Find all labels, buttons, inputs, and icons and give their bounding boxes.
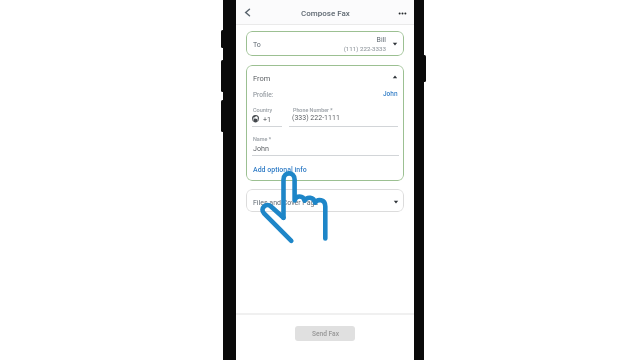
staticText: Files and Cover Page xyxy=(253,199,319,207)
button[interactable]: Back xyxy=(240,5,255,20)
staticText: Name * xyxy=(253,136,272,142)
staticText: Send Fax xyxy=(312,330,339,338)
staticText: To xyxy=(253,41,261,49)
staticText: John xyxy=(383,90,398,98)
button[interactable]: Send Fax xyxy=(295,326,355,341)
button[interactable]: More options xyxy=(395,6,409,20)
staticText: +1 xyxy=(263,115,272,123)
button[interactable]: To xyxy=(246,31,404,56)
button[interactable]: Files and Cover Page xyxy=(246,189,404,212)
staticText: Country xyxy=(253,107,273,113)
staticText: John xyxy=(253,144,269,152)
staticText: Phone Number * xyxy=(293,107,333,113)
staticText: (333) 222-1111 xyxy=(292,114,340,122)
staticText: From xyxy=(253,74,271,83)
staticText: Bill xyxy=(326,36,386,44)
staticText: Compose Fax xyxy=(301,9,350,18)
button[interactable]: From xyxy=(246,65,404,91)
staticText: (111) 222-3333 xyxy=(326,45,386,52)
staticText: Profile: xyxy=(253,91,274,99)
staticText: Add optional info xyxy=(253,166,307,174)
button[interactable]: Add optional info xyxy=(251,165,309,175)
button[interactable]: John xyxy=(358,88,398,99)
